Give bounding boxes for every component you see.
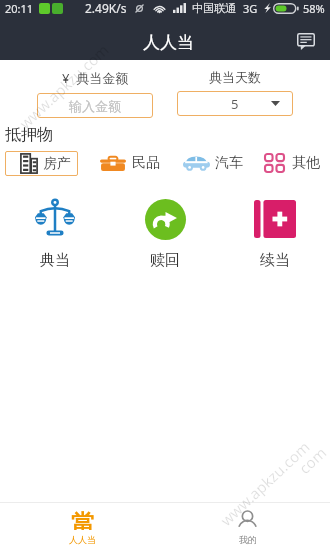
button[interactable]: 赎回	[110, 198, 220, 270]
button[interactable]: 5	[177, 91, 293, 116]
staticText: com	[294, 442, 330, 478]
button[interactable]: Messages	[291, 26, 321, 56]
button[interactable]: 民品	[100, 151, 160, 175]
staticText: 當	[71, 509, 94, 530]
button[interactable]: 當	[0, 503, 165, 550]
staticText: 20:11	[5, 1, 34, 16]
staticText: 2.49K/s	[85, 0, 127, 16]
staticText: 典当天数	[209, 69, 261, 85]
staticText: ¥ 典当金额	[62, 69, 129, 87]
staticText: 58%	[303, 1, 325, 16]
staticText: 5	[231, 95, 239, 113]
staticText: www.apkzu.com	[15, 39, 113, 133]
staticText: 典当	[40, 251, 70, 270]
button[interactable]: 汽车	[183, 151, 243, 175]
staticText: 抵押物	[5, 125, 53, 145]
staticText: 输入金额	[69, 98, 121, 114]
staticText: 3G	[243, 1, 258, 16]
staticText: 汽车	[215, 154, 243, 172]
button[interactable]: 输入金额	[37, 93, 153, 118]
staticText: 其他	[292, 154, 320, 172]
button[interactable]: 典当	[0, 198, 110, 270]
staticText: 我的	[239, 534, 257, 545]
staticText: 房产	[43, 155, 71, 173]
staticText: 民品	[132, 154, 160, 172]
staticText: www.apkzu.com	[216, 436, 314, 530]
staticText: 人人当	[143, 32, 194, 53]
staticText: 人人当	[69, 534, 96, 545]
staticText: 续当	[260, 251, 290, 270]
button[interactable]: 其他	[264, 150, 320, 176]
button[interactable]: 我的	[165, 503, 330, 550]
staticText: 赎回	[150, 251, 180, 270]
staticText: 中国联通	[192, 1, 236, 15]
button[interactable]: 房产	[5, 151, 78, 176]
button[interactable]: 续当	[220, 198, 330, 270]
